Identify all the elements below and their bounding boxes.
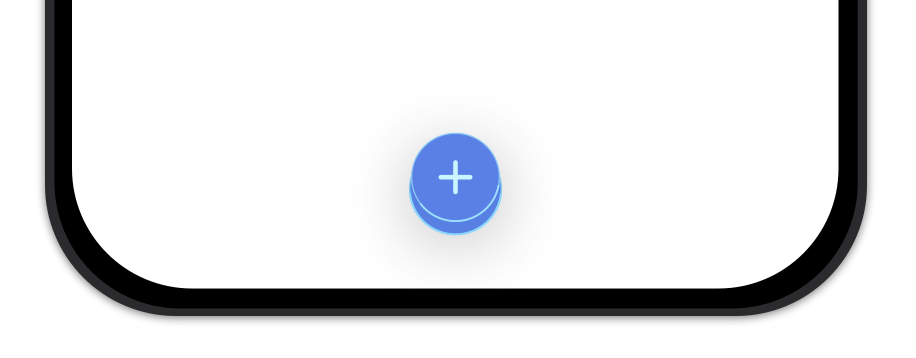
button[interactable]: Add bbox=[0, 0, 916, 358]
